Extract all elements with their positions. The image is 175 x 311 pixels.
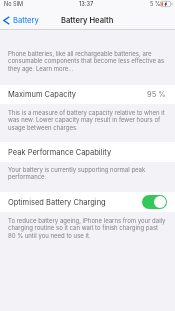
staticText: Battery xyxy=(13,16,39,25)
staticText: Maximum Capacity xyxy=(8,90,77,99)
button[interactable]: Optimised Battery Charging xyxy=(142,195,167,209)
button[interactable]: Battery xyxy=(0,14,43,27)
button[interactable]: Peak Performance Capability xyxy=(0,142,175,162)
staticText: This is a measure of battery capacity re… xyxy=(8,109,166,132)
staticText: Battery Health xyxy=(61,16,114,25)
staticText: Phone batteries, like all rechargeable b… xyxy=(8,50,166,73)
staticText: 5 % xyxy=(150,1,161,8)
staticText: No SIM xyxy=(4,1,23,8)
staticText: To reduce battery ageing, iPhone learns … xyxy=(8,217,166,240)
staticText: Your battery is currently supporting nor… xyxy=(8,166,166,181)
other: Battery charging xyxy=(160,1,174,7)
staticText: 95 % xyxy=(147,90,166,99)
button[interactable]: Optimised Battery Charging xyxy=(0,192,175,212)
staticText: 13:37 xyxy=(79,1,94,8)
staticText: Optimised Battery Charging xyxy=(8,198,106,207)
staticText: Peak Performance Capability xyxy=(8,148,112,157)
button[interactable]: Maximum Capacity xyxy=(0,85,175,104)
